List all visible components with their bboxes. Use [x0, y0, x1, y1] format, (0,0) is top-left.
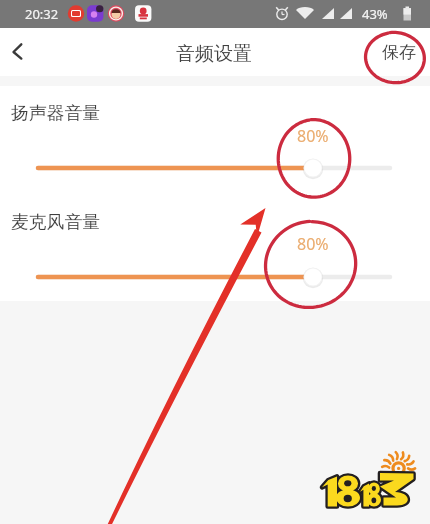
staticText: 麦克风音量	[11, 211, 100, 233]
button[interactable]: 保存	[364, 28, 430, 76]
button[interactable]	[0, 157, 430, 179]
staticText: 43%	[362, 5, 388, 23]
staticText: 80%	[297, 125, 329, 147]
staticText: 音频设置	[176, 42, 252, 66]
button[interactable]: Back	[0, 30, 44, 74]
staticText: 20:32	[25, 5, 59, 23]
staticText: 扬声器音量	[11, 102, 100, 124]
staticText: 80%	[297, 233, 329, 255]
staticText: 保存	[382, 42, 416, 63]
button[interactable]	[0, 266, 430, 288]
